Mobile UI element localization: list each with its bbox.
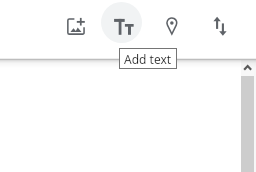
button[interactable]: Add photo bbox=[56, 6, 96, 46]
button[interactable]: Add text bbox=[101, 2, 141, 42]
button[interactable]: Reorder bbox=[200, 6, 240, 46]
staticText: Add text bbox=[124, 51, 172, 67]
button[interactable]: Add location bbox=[152, 6, 192, 46]
button[interactable]: Scroll up bbox=[241, 59, 254, 76]
